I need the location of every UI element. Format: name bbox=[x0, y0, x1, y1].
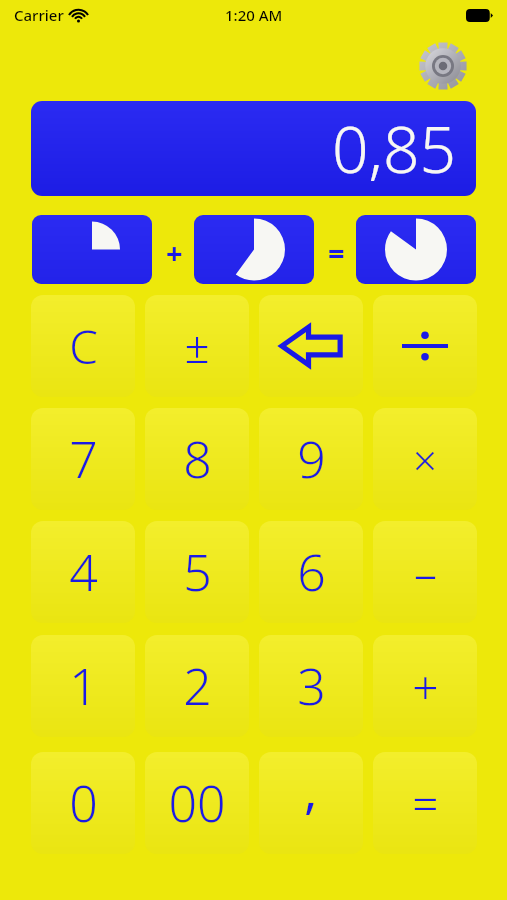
button[interactable]: 3 bbox=[259, 635, 363, 737]
button[interactable]: Settings bbox=[418, 41, 468, 91]
button[interactable]: Result pie bbox=[356, 215, 476, 284]
staticText: C bbox=[69, 315, 98, 378]
staticText: – bbox=[414, 541, 437, 604]
staticText: 0,85 bbox=[331, 105, 456, 192]
button[interactable]: Decimal separator bbox=[259, 752, 363, 854]
staticText: ± bbox=[184, 316, 210, 376]
button[interactable]: 8 bbox=[145, 408, 249, 510]
staticText: 6 bbox=[297, 538, 326, 606]
button[interactable]: 4 bbox=[31, 521, 135, 623]
staticText: 4 bbox=[69, 538, 98, 606]
button[interactable]: 6 bbox=[259, 521, 363, 623]
staticText: , bbox=[304, 756, 318, 824]
staticText: 2 bbox=[183, 652, 212, 720]
button[interactable]: 9 bbox=[259, 408, 363, 510]
button[interactable]: 2 bbox=[145, 635, 249, 737]
staticText: 0 bbox=[69, 769, 98, 837]
button[interactable]: C bbox=[31, 295, 135, 397]
staticText: 1 bbox=[69, 652, 98, 720]
button[interactable]: 5 bbox=[145, 521, 249, 623]
staticText: × bbox=[413, 431, 437, 488]
staticText: 3 bbox=[297, 652, 326, 720]
button[interactable]: 0,85 bbox=[31, 101, 476, 196]
staticText: = bbox=[328, 233, 345, 265]
button[interactable]: Divide bbox=[373, 295, 477, 397]
button[interactable]: Backspace bbox=[259, 295, 363, 397]
button[interactable]: 1 bbox=[31, 635, 135, 737]
staticText: + bbox=[166, 233, 183, 265]
staticText: 9 bbox=[297, 425, 326, 493]
staticText: 1:20 AM bbox=[225, 5, 283, 25]
button[interactable]: – bbox=[373, 521, 477, 623]
button[interactable]: 7 bbox=[31, 408, 135, 510]
staticText: Carrier bbox=[14, 5, 64, 25]
button[interactable]: ± bbox=[145, 295, 249, 397]
button[interactable]: × bbox=[373, 408, 477, 510]
button[interactable]: First operand pie bbox=[32, 215, 152, 284]
button[interactable]: Second operand pie bbox=[194, 215, 314, 284]
staticText: 7 bbox=[69, 425, 98, 493]
staticText: 00 bbox=[168, 769, 226, 837]
staticText: = bbox=[412, 772, 439, 835]
button[interactable]: + bbox=[373, 635, 477, 737]
staticText: + bbox=[412, 655, 439, 718]
button[interactable]: 00 bbox=[145, 752, 249, 854]
button[interactable]: 0 bbox=[31, 752, 135, 854]
button[interactable]: = bbox=[373, 752, 477, 854]
staticText: 5 bbox=[183, 538, 212, 606]
staticText: 8 bbox=[183, 425, 212, 493]
